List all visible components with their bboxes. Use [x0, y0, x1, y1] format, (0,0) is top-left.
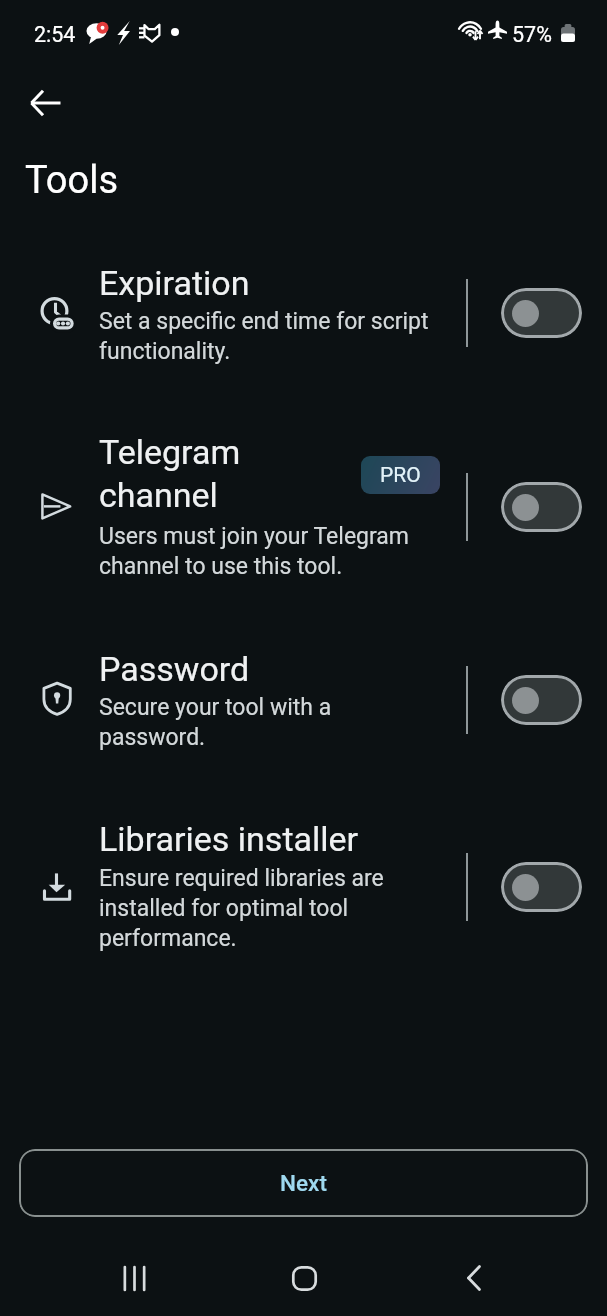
staticText: 57% — [512, 21, 552, 47]
staticText: 2:54 — [34, 21, 76, 47]
staticText: Telegram channel — [99, 430, 241, 516]
staticText: Next — [280, 1170, 327, 1196]
button[interactable]: Toggle — [501, 288, 582, 338]
button[interactable]: Toggle — [501, 675, 582, 725]
button[interactable]: PRO — [361, 456, 440, 494]
button[interactable]: Recent apps — [104, 1248, 164, 1308]
button[interactable]: Toggle — [501, 862, 582, 912]
staticText: Libraries installer — [99, 817, 359, 860]
button[interactable]: Home — [274, 1248, 334, 1308]
button[interactable]: Libraries installer — [0, 792, 607, 982]
staticText: Password — [99, 647, 250, 690]
button[interactable]: Back — [19, 77, 71, 129]
button[interactable]: Toggle — [501, 482, 582, 532]
staticText: Expiration — [99, 261, 250, 304]
button[interactable]: Password — [0, 605, 607, 795]
button[interactable]: Next — [19, 1149, 588, 1217]
staticText: Set a specific end time for script funct… — [99, 306, 429, 366]
button[interactable]: Telegram channel — [0, 412, 607, 602]
staticText: Tools — [25, 157, 119, 203]
button[interactable]: Expiration — [0, 218, 607, 408]
staticText: Secure your tool with a password. — [99, 692, 332, 752]
staticText: Ensure required libraries are installed … — [99, 863, 384, 953]
button[interactable]: Back — [444, 1248, 504, 1308]
staticText: Users must join your Telegram channel to… — [99, 521, 410, 581]
staticText: PRO — [380, 463, 421, 488]
